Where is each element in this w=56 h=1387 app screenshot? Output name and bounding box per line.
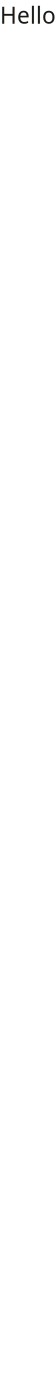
staticText: Hello: [0, 0, 56, 30]
